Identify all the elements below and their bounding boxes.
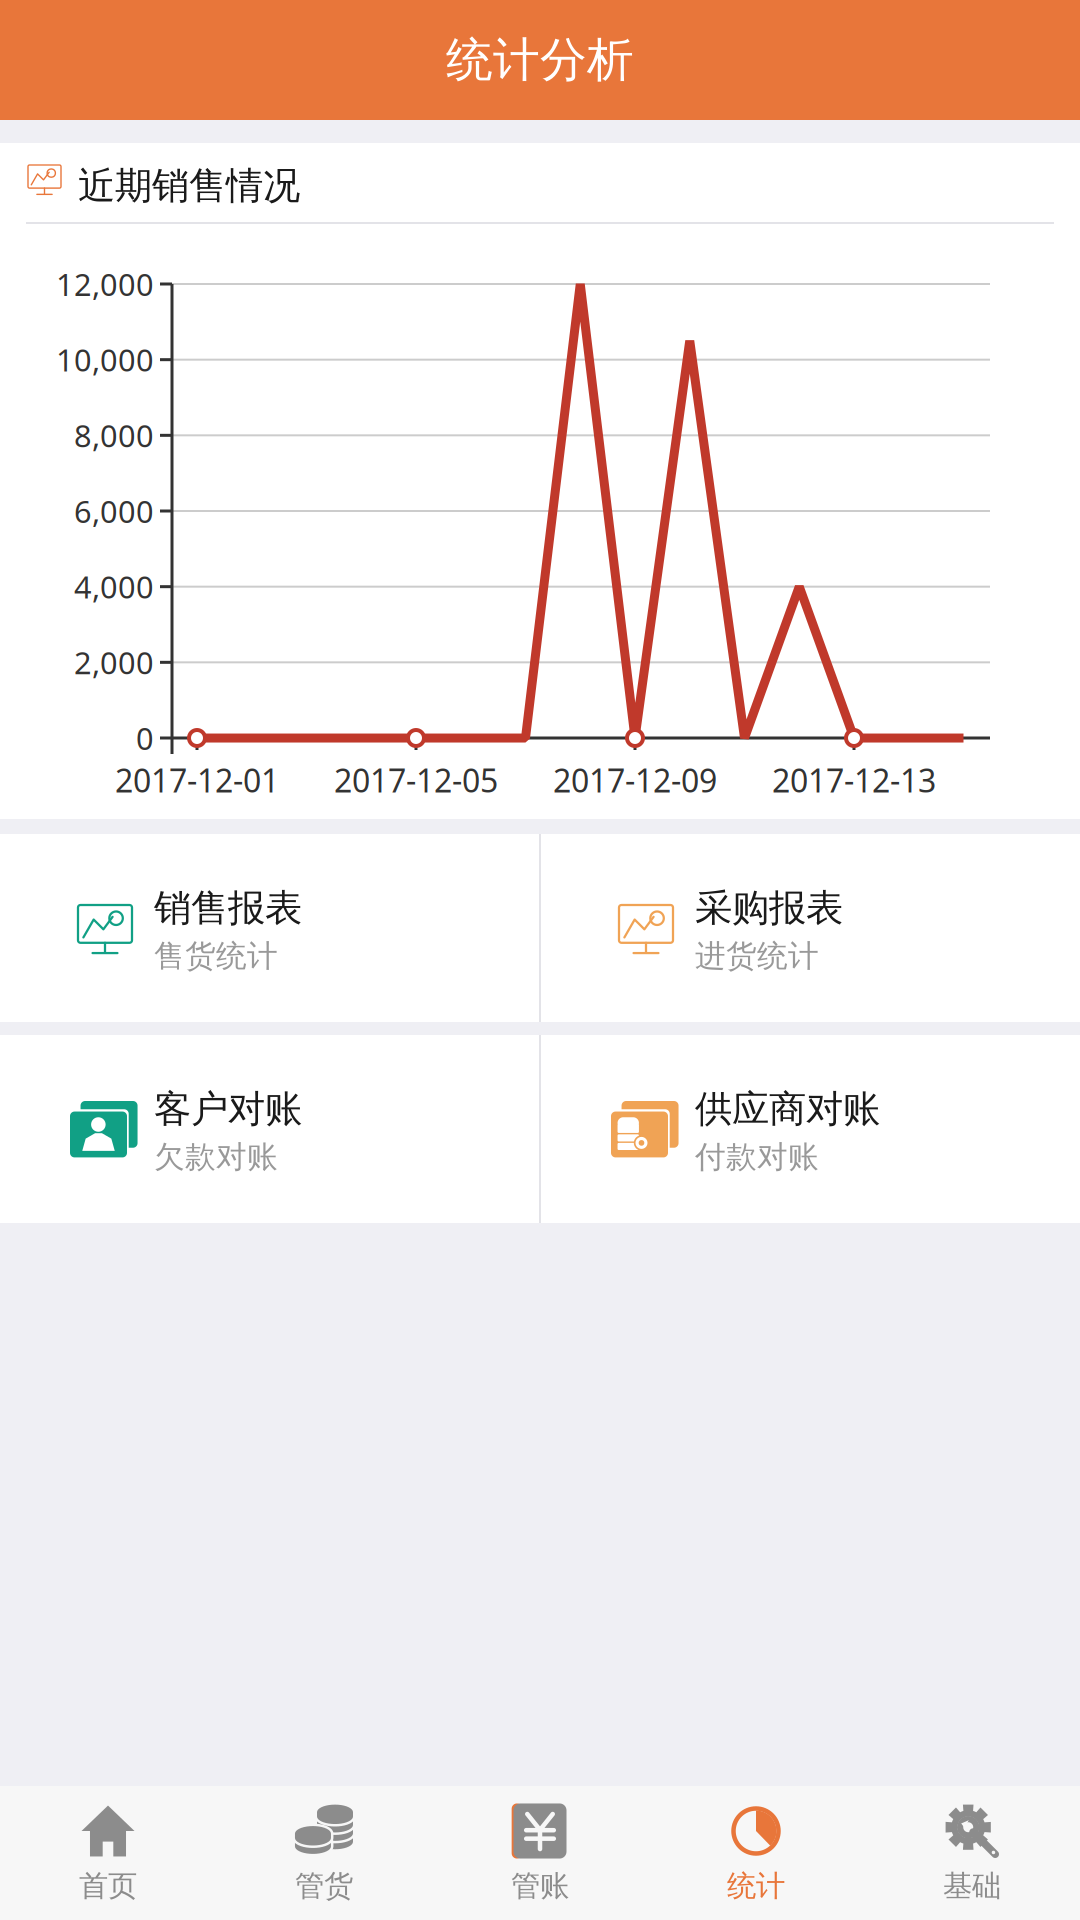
staticText: 统计分析 bbox=[446, 31, 634, 89]
staticText: 2017-12-01 bbox=[115, 759, 279, 801]
button[interactable]: 首页 bbox=[0, 1786, 216, 1920]
staticText: 付款对账 bbox=[695, 1138, 819, 1176]
staticText: 进货统计 bbox=[695, 937, 819, 975]
staticText: 6,000 bbox=[74, 491, 154, 531]
button[interactable]: 客户对账 bbox=[0, 1035, 539, 1223]
button[interactable]: 采购报表 bbox=[541, 834, 1080, 1022]
staticText: 采购报表 bbox=[695, 885, 843, 931]
button[interactable]: 统计 bbox=[648, 1786, 864, 1920]
staticText: 4,000 bbox=[74, 566, 154, 607]
button[interactable]: 管账 bbox=[432, 1786, 648, 1920]
staticText: 8,000 bbox=[74, 415, 154, 456]
staticText: 欠款对账 bbox=[154, 1138, 278, 1176]
staticText: 10,000 bbox=[56, 339, 154, 380]
staticText: 管货 bbox=[295, 1868, 353, 1904]
staticText: 基础 bbox=[943, 1868, 1001, 1904]
button[interactable]: 基础 bbox=[864, 1786, 1080, 1920]
staticText: 首页 bbox=[79, 1868, 137, 1904]
staticText: 2017-12-05 bbox=[334, 759, 498, 801]
staticText: 售货统计 bbox=[154, 937, 278, 975]
staticText: 供应商对账 bbox=[695, 1086, 880, 1132]
staticText: 客户对账 bbox=[154, 1086, 302, 1132]
staticText: 销售报表 bbox=[154, 885, 302, 931]
staticText: 0 bbox=[136, 718, 154, 758]
button[interactable]: 供应商对账 bbox=[541, 1035, 1080, 1223]
staticText: 2017-12-13 bbox=[772, 759, 936, 801]
button[interactable]: 管货 bbox=[216, 1786, 432, 1920]
staticText: 近期销售情况 bbox=[78, 163, 300, 209]
staticText: 统计 bbox=[727, 1868, 785, 1904]
staticText: 2,000 bbox=[74, 642, 154, 683]
button[interactable]: 销售报表 bbox=[0, 834, 539, 1022]
staticText: 2017-12-09 bbox=[553, 759, 717, 801]
staticText: 管账 bbox=[511, 1868, 569, 1904]
staticText: 12,000 bbox=[56, 264, 154, 304]
